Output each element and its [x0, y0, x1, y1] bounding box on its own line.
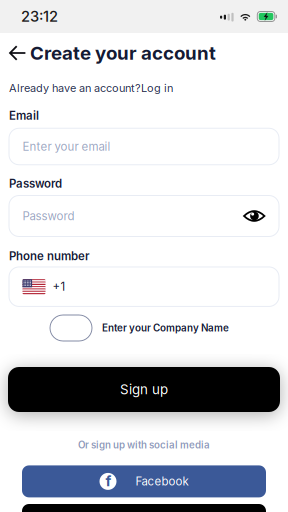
- staticText: Email: [9, 109, 39, 122]
- staticText: Already have an account?: [9, 81, 141, 95]
- staticText: Enter your email: [22, 140, 110, 153]
- button[interactable]: Show password: [243, 209, 265, 223]
- staticText: Enter your Company Name: [102, 322, 229, 334]
- staticText: Or sign up with social media: [78, 439, 210, 451]
- staticText: Create your account: [30, 42, 216, 64]
- staticText: Log in: [141, 81, 173, 95]
- staticText: Password: [22, 209, 74, 223]
- staticText: Facebook: [135, 474, 188, 488]
- staticText: f: [105, 472, 111, 490]
- button[interactable]: Back: [9, 45, 26, 61]
- staticText: Phone number: [9, 249, 90, 263]
- staticText: 23:12: [21, 8, 58, 25]
- staticText: +1: [52, 280, 65, 294]
- button[interactable]: Country code: [22, 279, 65, 294]
- button[interactable]: Enter your Company Name: [50, 315, 229, 341]
- button[interactable]: Sign up: [8, 367, 280, 412]
- button[interactable]: f: [22, 465, 266, 497]
- staticText: Sign up: [120, 381, 168, 397]
- button[interactable]: Log in: [141, 81, 173, 95]
- staticText: Password: [9, 177, 62, 190]
- button[interactable]: Apple: [22, 504, 266, 512]
